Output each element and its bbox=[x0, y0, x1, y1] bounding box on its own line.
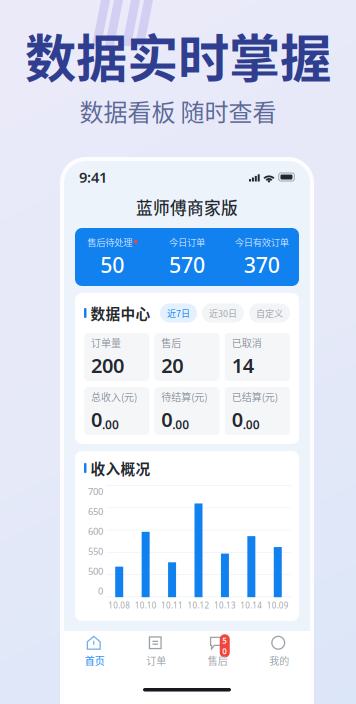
staticText: 9:41 bbox=[79, 167, 107, 187]
staticText: 10.10 bbox=[135, 600, 157, 611]
staticText: 蓝师傅商家版 bbox=[136, 195, 238, 219]
staticText: 自定义 bbox=[256, 306, 283, 319]
staticText: 售后待处理 bbox=[87, 235, 132, 249]
button[interactable]: 近7日 bbox=[160, 303, 197, 322]
staticText: 570 bbox=[169, 251, 205, 279]
staticText: 订单 bbox=[146, 653, 166, 668]
staticText: 数据实时掌握 bbox=[25, 18, 331, 92]
staticText: 0 bbox=[98, 585, 103, 597]
staticText: 50 bbox=[222, 635, 227, 656]
button[interactable]: 50 bbox=[187, 634, 248, 668]
staticText: 200 bbox=[91, 352, 124, 379]
staticText: 数据看板 随时查看 bbox=[79, 93, 276, 128]
staticText: 首页 bbox=[85, 653, 105, 668]
staticText: 今日订单 bbox=[169, 235, 205, 249]
staticText: 收入概况 bbox=[90, 457, 150, 479]
staticText: 50 bbox=[100, 251, 124, 279]
button[interactable]: 今日有效订单 bbox=[224, 235, 299, 279]
staticText: 已结算(元) bbox=[232, 389, 278, 404]
button[interactable]: 今日订单 bbox=[150, 235, 224, 279]
staticText: 0 bbox=[91, 406, 102, 433]
staticText: 0 bbox=[232, 406, 243, 433]
button[interactable]: 售后待处理 bbox=[75, 235, 150, 279]
staticText: 650 bbox=[88, 505, 103, 517]
button[interactable]: 自定义 bbox=[249, 303, 290, 322]
staticText: 今日有效订单 bbox=[235, 235, 289, 249]
staticText: 0 bbox=[161, 406, 172, 433]
staticText: 近30日 bbox=[209, 306, 237, 319]
staticText: .00 bbox=[243, 417, 260, 432]
staticText: .00 bbox=[102, 417, 119, 432]
staticText: .00 bbox=[172, 417, 189, 432]
staticText: 总收入(元) bbox=[91, 389, 137, 404]
staticText: 10.09 bbox=[267, 600, 289, 611]
staticText: 已取消 bbox=[232, 335, 262, 350]
button[interactable]: 我的 bbox=[248, 634, 310, 668]
staticText: 售后 bbox=[161, 335, 181, 350]
staticText: 10.13 bbox=[214, 600, 236, 611]
staticText: 10.14 bbox=[240, 600, 262, 611]
staticText: 20 bbox=[161, 352, 183, 379]
staticText: 10.11 bbox=[161, 600, 183, 611]
staticText: 售后 bbox=[208, 653, 228, 668]
staticText: 订单量 bbox=[91, 335, 121, 350]
staticText: 待结算(元) bbox=[161, 389, 207, 404]
staticText: 数据中心 bbox=[90, 302, 150, 324]
staticText: 550 bbox=[88, 545, 103, 557]
staticText: 700 bbox=[88, 485, 103, 498]
button[interactable]: 首页 bbox=[64, 634, 125, 668]
staticText: 14 bbox=[232, 352, 254, 379]
staticText: 10.08 bbox=[108, 600, 130, 611]
staticText: 近7日 bbox=[167, 306, 190, 319]
staticText: 10.12 bbox=[187, 600, 209, 611]
staticText: 600 bbox=[88, 525, 103, 537]
staticText: 500 bbox=[88, 565, 103, 577]
button[interactable]: 订单 bbox=[125, 634, 187, 668]
button[interactable]: 近30日 bbox=[202, 303, 244, 322]
staticText: 370 bbox=[244, 251, 280, 279]
staticText: 我的 bbox=[269, 653, 289, 668]
